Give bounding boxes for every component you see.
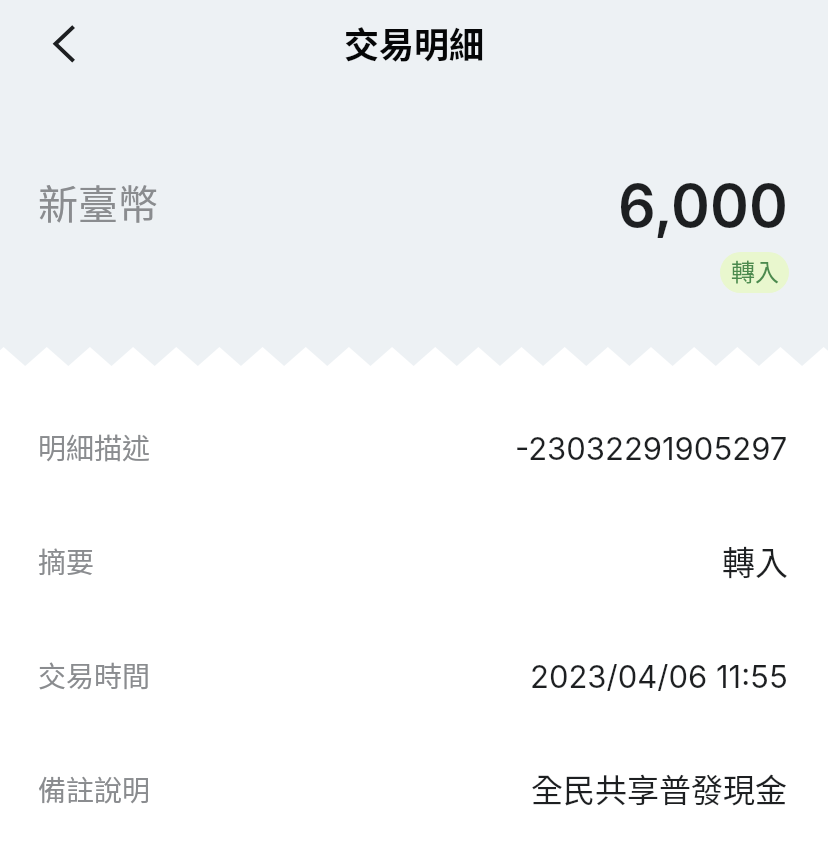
staticText: 轉入 (731, 253, 779, 288)
staticText: 轉入 (722, 537, 788, 585)
staticText: 交易明細 (344, 17, 485, 68)
button[interactable]: 轉入 (720, 252, 789, 293)
button[interactable]: 備註說明 (0, 732, 828, 846)
staticText: 新臺幣 (38, 173, 158, 231)
button[interactable]: 摘要 (0, 504, 828, 618)
staticText: 交易時間 (38, 655, 151, 696)
staticText: 全民共享普發現金 (531, 765, 788, 811)
staticText: 6,000 (618, 170, 788, 241)
staticText: 明細描述 (38, 427, 151, 468)
button[interactable]: 交易時間 (0, 618, 828, 732)
staticText: 備註說明 (38, 769, 151, 810)
staticText: 摘要 (38, 541, 95, 582)
button[interactable]: Back (23, 4, 103, 84)
staticText: 2023/04/06 11:55 (530, 658, 788, 696)
staticText: -23032291905297 (515, 430, 788, 468)
button[interactable]: 明細描述 (0, 390, 828, 504)
